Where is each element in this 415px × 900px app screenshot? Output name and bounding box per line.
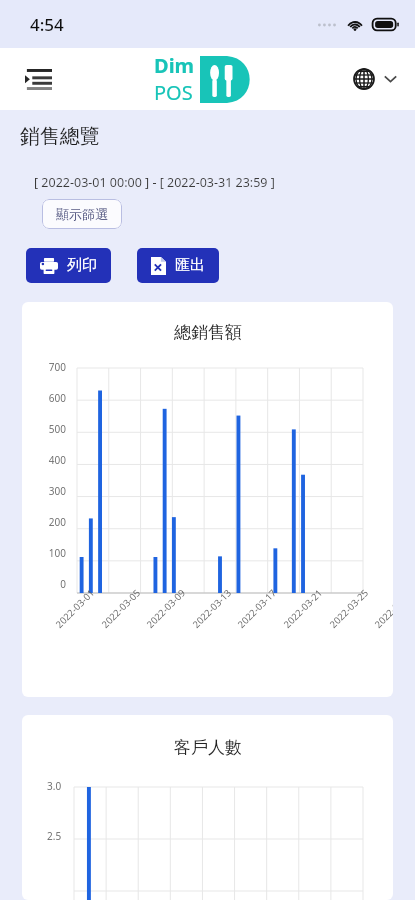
staticText: [ 2022-03-01 00:00 ] - [ 2022-03-31 23:5… [34,174,275,191]
staticText: 200 [48,515,66,529]
staticText: 2022-03-21 [281,586,325,631]
staticText: 2022-03-29 [372,586,393,631]
button[interactable]: 列印 [26,248,111,283]
staticText: 2022-03-25 [327,586,371,631]
staticText: 2022-03-17 [235,586,279,631]
staticText: 列印 [67,256,97,275]
staticText: 客戶人數 [174,737,242,758]
staticText: 總銷售額 [174,322,242,343]
button[interactable]: 顯示篩選 [42,199,122,229]
staticText: 2022-03-09 [144,586,188,631]
staticText: 2022-03-05 [99,586,143,631]
staticText: 500 [48,422,66,436]
staticText: 匯出 [175,256,205,275]
staticText: 600 [48,391,66,405]
staticText: 2022-03-01 [53,586,97,631]
staticText: 3.0 [47,779,62,793]
button[interactable]: 總銷售額 [22,302,393,697]
staticText: POS [154,79,193,106]
staticText: 銷售總覽 [20,124,100,149]
button[interactable]: 客戶人數 [22,715,393,900]
staticText: 4:54 [30,13,64,36]
staticText: Dim [154,52,195,79]
staticText: 100 [48,546,66,560]
button[interactable]: Menu [16,57,60,101]
staticText: 400 [48,453,66,467]
staticText: 300 [48,484,66,498]
staticText: 2.5 [47,829,62,843]
staticText: 顯示篩選 [56,206,108,222]
staticText: 700 [48,360,66,374]
button[interactable]: Language [347,58,403,100]
staticText: 0 [60,577,66,591]
staticText: 2022-03-13 [190,586,234,631]
button[interactable]: 匯出 [137,248,219,283]
